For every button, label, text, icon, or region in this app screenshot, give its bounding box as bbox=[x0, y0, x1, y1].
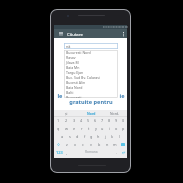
button[interactable]: i bbox=[106, 124, 113, 132]
staticText: și bbox=[65, 111, 68, 116]
staticText: j bbox=[105, 134, 106, 139]
button[interactable]: Șterge bbox=[119, 140, 127, 148]
staticText: p bbox=[122, 126, 125, 131]
button[interactable]: 6 bbox=[92, 116, 99, 124]
staticText: 123 bbox=[56, 150, 63, 155]
button[interactable]: Mai multe opțiuni bbox=[120, 31, 126, 37]
button[interactable]: nă bbox=[64, 43, 118, 49]
button[interactable]: p bbox=[120, 124, 127, 132]
staticText: 1 bbox=[57, 118, 60, 123]
button[interactable]: Nord bbox=[79, 110, 103, 116]
button[interactable]: n bbox=[103, 140, 111, 148]
button[interactable]: Buc. Sud Bv. Calarasi bbox=[66, 75, 118, 80]
button[interactable]: Meniu bbox=[58, 31, 63, 36]
button[interactable]: Balti bbox=[66, 90, 118, 95]
button[interactable]: Enter bbox=[119, 148, 127, 156]
button[interactable]: Nord- bbox=[103, 110, 127, 116]
staticText: 9 bbox=[115, 118, 118, 123]
button[interactable]: k bbox=[109, 132, 116, 140]
staticText: 6 bbox=[94, 118, 97, 123]
button[interactable]: 2 bbox=[62, 116, 70, 124]
staticText: i bbox=[109, 126, 110, 131]
staticText: Balti bbox=[66, 90, 74, 95]
staticText: c bbox=[82, 142, 84, 147]
button[interactable]: r bbox=[78, 124, 85, 132]
button[interactable]: v bbox=[87, 140, 95, 148]
staticText: Baia Mn bbox=[66, 65, 80, 70]
staticText: 3 bbox=[73, 118, 76, 123]
button[interactable]: Baia Mn bbox=[66, 65, 118, 70]
button[interactable]: s bbox=[66, 132, 74, 140]
button[interactable]: m bbox=[111, 140, 119, 148]
button[interactable]: Shift bbox=[54, 140, 62, 148]
staticText: l bbox=[119, 134, 120, 139]
button[interactable]: Targu Ejan bbox=[66, 70, 118, 75]
button[interactable]: a bbox=[58, 132, 66, 140]
button[interactable]: Baia Nord bbox=[66, 85, 118, 90]
button[interactable]: z bbox=[62, 140, 71, 148]
button[interactable]: j bbox=[102, 132, 109, 140]
button[interactable]: b bbox=[95, 140, 103, 148]
button[interactable]: 8 bbox=[106, 116, 113, 124]
staticText: Bucuresti bbox=[66, 95, 82, 98]
staticText: Buc. Sud Bv. Calarasi bbox=[66, 75, 100, 80]
staticText: Baia Nord bbox=[66, 85, 83, 90]
staticText: Bucesti Alin bbox=[66, 80, 86, 85]
staticText: 7 bbox=[101, 118, 104, 123]
button[interactable]: l bbox=[116, 132, 123, 140]
staticText: Jilava M bbox=[66, 60, 79, 65]
button[interactable]: o bbox=[113, 124, 120, 132]
button[interactable]: 4 bbox=[78, 116, 85, 124]
button[interactable]: . bbox=[114, 148, 119, 156]
button[interactable]: 3 bbox=[70, 116, 78, 124]
staticText: 4 bbox=[80, 118, 83, 123]
button[interactable]: e bbox=[70, 124, 78, 132]
staticText: w bbox=[65, 126, 68, 131]
staticText: Targu Ejan bbox=[66, 70, 84, 75]
button[interactable]: 0 bbox=[120, 116, 127, 124]
staticText: 0 bbox=[122, 118, 125, 123]
button[interactable]: 9 bbox=[113, 116, 120, 124]
button[interactable]: Jilava M bbox=[66, 60, 118, 65]
button[interactable]: , bbox=[64, 148, 69, 156]
button[interactable]: Bucesti Alin bbox=[66, 80, 118, 85]
staticText: u bbox=[101, 126, 104, 131]
button[interactable]: Bucuresti bbox=[66, 95, 118, 98]
staticText: h bbox=[97, 134, 100, 139]
staticText: k bbox=[111, 134, 114, 139]
staticText: g bbox=[90, 134, 93, 139]
button[interactable]: c bbox=[79, 140, 87, 148]
button[interactable]: și bbox=[54, 110, 79, 116]
staticText: v bbox=[90, 142, 92, 147]
staticText: 5 bbox=[87, 118, 90, 123]
button[interactable]: y bbox=[92, 124, 99, 132]
button[interactable]: w bbox=[62, 124, 70, 132]
staticText: r bbox=[81, 126, 83, 131]
button[interactable]: t bbox=[85, 124, 92, 132]
button[interactable]: d bbox=[74, 132, 81, 140]
button[interactable]: Rasov bbox=[66, 55, 118, 60]
button[interactable]: 5 bbox=[85, 116, 92, 124]
staticText: Nord bbox=[87, 111, 96, 116]
button[interactable]: 1 bbox=[54, 116, 62, 124]
button[interactable]: 7 bbox=[99, 116, 106, 124]
staticText: , bbox=[66, 150, 68, 155]
button[interactable]: h bbox=[95, 132, 102, 140]
button[interactable]: x bbox=[71, 140, 79, 148]
button[interactable]: Spațiu bbox=[69, 148, 114, 156]
button[interactable]: 123 bbox=[54, 148, 64, 156]
staticText: y bbox=[95, 126, 97, 131]
staticText: Rasov bbox=[66, 55, 76, 60]
button[interactable]: g bbox=[88, 132, 95, 140]
button[interactable]: u bbox=[99, 124, 106, 132]
staticText: x bbox=[74, 142, 77, 147]
staticText: Nord- bbox=[110, 111, 120, 116]
staticText: b bbox=[98, 142, 101, 147]
staticText: 8 bbox=[108, 118, 111, 123]
button[interactable]: q bbox=[54, 124, 62, 132]
staticText: s bbox=[69, 134, 71, 139]
staticText: z bbox=[66, 142, 68, 147]
button[interactable]: f bbox=[81, 132, 88, 140]
staticText: a bbox=[61, 134, 64, 139]
button[interactable]: Bucuresti Nord bbox=[66, 50, 118, 55]
